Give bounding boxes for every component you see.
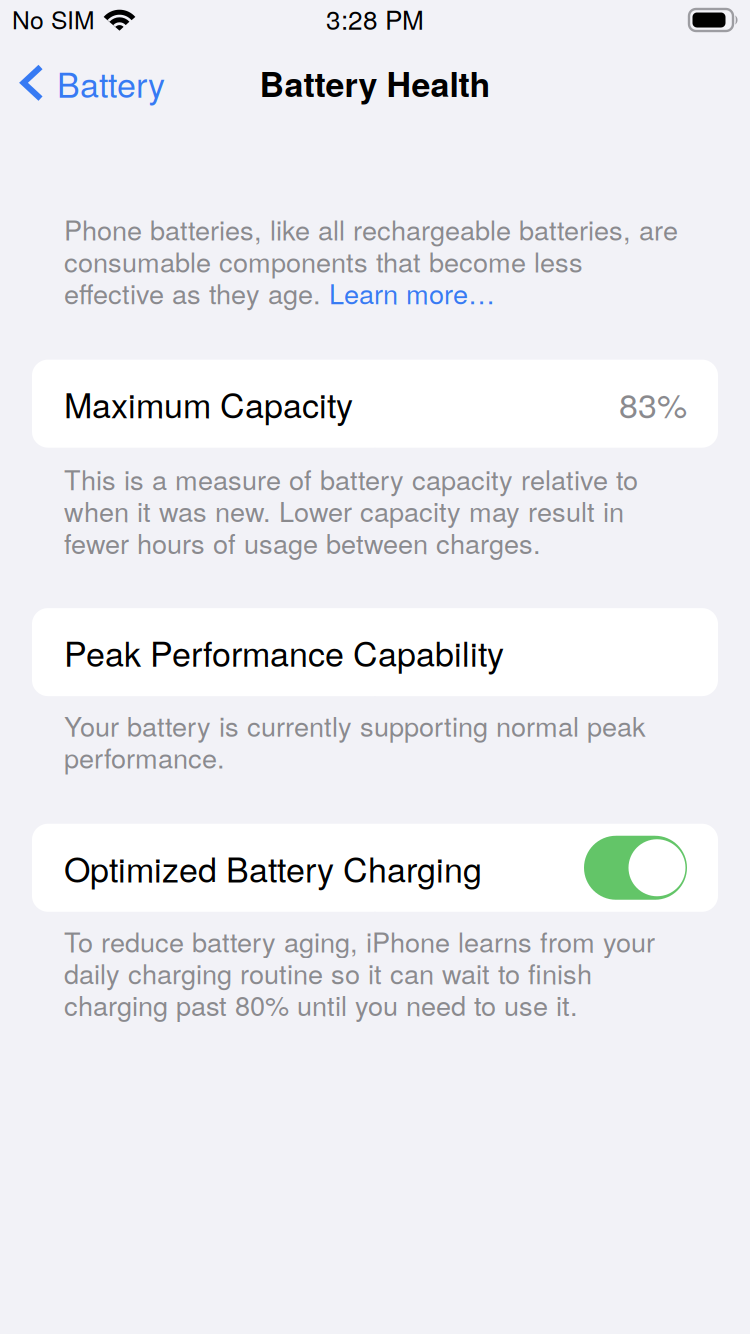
staticText: Phone batteries, like all rechargeable b… [64, 213, 678, 277]
staticText: Your battery is currently supporting nor… [64, 709, 646, 773]
button[interactable]: Optimized Battery Charging [584, 836, 687, 900]
staticText: Peak Performance Capability [64, 628, 504, 676]
staticText: To reduce battery aging, iPhone learns f… [64, 925, 655, 1020]
staticText: Learn more… [329, 277, 495, 308]
staticText: Battery [57, 59, 165, 107]
button[interactable]: Peak Performance Capability [32, 608, 718, 696]
staticText: This is a measure of battery capacity re… [64, 463, 638, 558]
staticText: 3:28 PM [326, 0, 424, 37]
staticText: Battery Health [259, 59, 490, 107]
staticText: Maximum Capacity [64, 379, 353, 428]
button[interactable]: Battery [0, 47, 179, 119]
staticText: Optimized Battery Charging [64, 843, 482, 892]
button[interactable]: Learn more… [329, 277, 495, 308]
staticText: 83% [619, 379, 687, 428]
staticText: No SIM [12, 1, 95, 36]
staticText: effective as they age. [64, 277, 329, 308]
